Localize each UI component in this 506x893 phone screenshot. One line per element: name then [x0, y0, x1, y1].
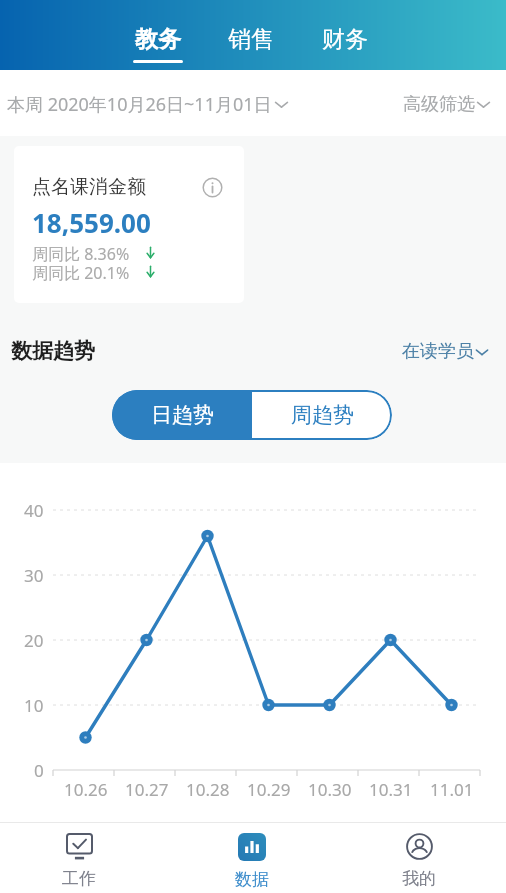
staticText: 周同比 20.1%	[32, 262, 130, 281]
staticText: 销售	[228, 25, 274, 54]
staticText: 数据趋势	[11, 338, 95, 364]
button[interactable]: 销售	[226, 25, 276, 63]
staticText: 20	[24, 629, 44, 652]
staticText: 在读学员	[402, 340, 474, 363]
staticText: 10.29	[247, 778, 291, 801]
button[interactable]: 点名课消金额	[14, 146, 244, 303]
staticText: 我的	[402, 868, 436, 889]
staticText: 10	[24, 694, 44, 717]
button[interactable]: 高级筛选	[403, 85, 492, 124]
staticText: 教务	[135, 25, 181, 54]
staticText: 10.27	[125, 778, 169, 801]
staticText: 数据	[235, 869, 269, 890]
button[interactable]: 日趋势	[112, 390, 252, 440]
staticText: 本周 2020年10月26日~11月01日	[7, 92, 272, 117]
button[interactable]: 教务	[133, 25, 183, 63]
staticText: 周趋势	[291, 402, 354, 428]
staticText: 周同比 8.36%	[32, 243, 130, 262]
staticText: 高级筛选	[403, 93, 475, 116]
button[interactable]: 我的	[379, 828, 459, 893]
button[interactable]: 财务	[320, 25, 370, 63]
staticText: 10.26	[64, 778, 108, 801]
button[interactable]: 工作	[39, 828, 119, 893]
button[interactable]: 本周 2020年10月26日~11月01日	[7, 84, 290, 125]
staticText: 10.31	[369, 778, 413, 801]
staticText: 30	[24, 564, 44, 587]
button[interactable]: Info	[202, 177, 223, 198]
button[interactable]: 数据	[212, 828, 292, 893]
staticText: 0	[34, 759, 44, 782]
staticText: 11.01	[430, 778, 474, 801]
staticText: 10.30	[308, 778, 352, 801]
staticText: 日趋势	[151, 402, 214, 428]
staticText: 18,559.00	[32, 205, 151, 240]
staticText: 财务	[322, 25, 368, 54]
staticText: 10.28	[186, 778, 230, 801]
staticText: 40	[24, 499, 44, 522]
staticText: 点名课消金额	[32, 175, 146, 199]
button[interactable]: 周趋势	[252, 390, 392, 440]
staticText: 工作	[62, 868, 96, 889]
button[interactable]: 在读学员	[402, 334, 490, 369]
